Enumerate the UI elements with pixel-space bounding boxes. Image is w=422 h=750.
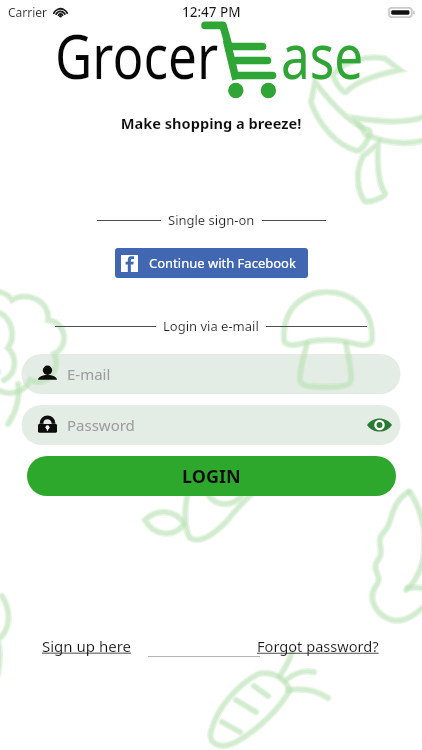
staticText: 12:47 PM	[182, 3, 241, 21]
button[interactable]: Continue with Facebook	[115, 248, 308, 278]
button[interactable]: Sign up here	[42, 636, 131, 656]
button[interactable]: Password	[22, 405, 401, 445]
staticText: Grocer	[55, 13, 219, 97]
staticText: E-mail	[67, 364, 111, 384]
staticText: Make shopping a breeze!	[0, 113, 422, 133]
staticText: Sign up here	[42, 636, 131, 656]
button[interactable]: E-mail	[22, 354, 401, 394]
staticText: LOGIN	[182, 464, 241, 489]
staticText: Single sign-on	[168, 211, 255, 229]
staticText: Continue with Facebook	[149, 254, 296, 272]
button[interactable]: Forgot password?	[257, 636, 379, 656]
button[interactable]: Show password	[359, 405, 399, 445]
staticText: ase	[281, 13, 364, 97]
staticText: Login via e-mail	[163, 317, 259, 335]
button[interactable]: LOGIN	[27, 456, 396, 496]
staticText: Carrier	[8, 4, 48, 20]
staticText: Forgot password?	[257, 636, 379, 656]
staticText: Password	[67, 415, 135, 435]
